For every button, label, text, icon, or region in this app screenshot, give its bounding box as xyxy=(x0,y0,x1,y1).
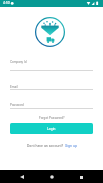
button[interactable]: Forgot Password? xyxy=(37,115,67,121)
button[interactable]: Back xyxy=(15,171,29,183)
staticText: Password xyxy=(10,103,24,107)
staticText: Company Id xyxy=(10,60,27,64)
staticText: Forgot Password? xyxy=(39,116,65,120)
button[interactable]: Home xyxy=(45,171,59,183)
staticText: Sign up xyxy=(65,144,77,148)
button[interactable]: Recents xyxy=(74,171,88,183)
button[interactable]: Sign up xyxy=(65,144,77,148)
staticText: Login xyxy=(47,127,56,131)
button[interactable]: Login xyxy=(10,123,93,134)
staticText: Dont have an account? xyxy=(27,144,65,148)
staticText: 4:50 xyxy=(3,1,10,5)
staticText: Email xyxy=(10,85,18,89)
